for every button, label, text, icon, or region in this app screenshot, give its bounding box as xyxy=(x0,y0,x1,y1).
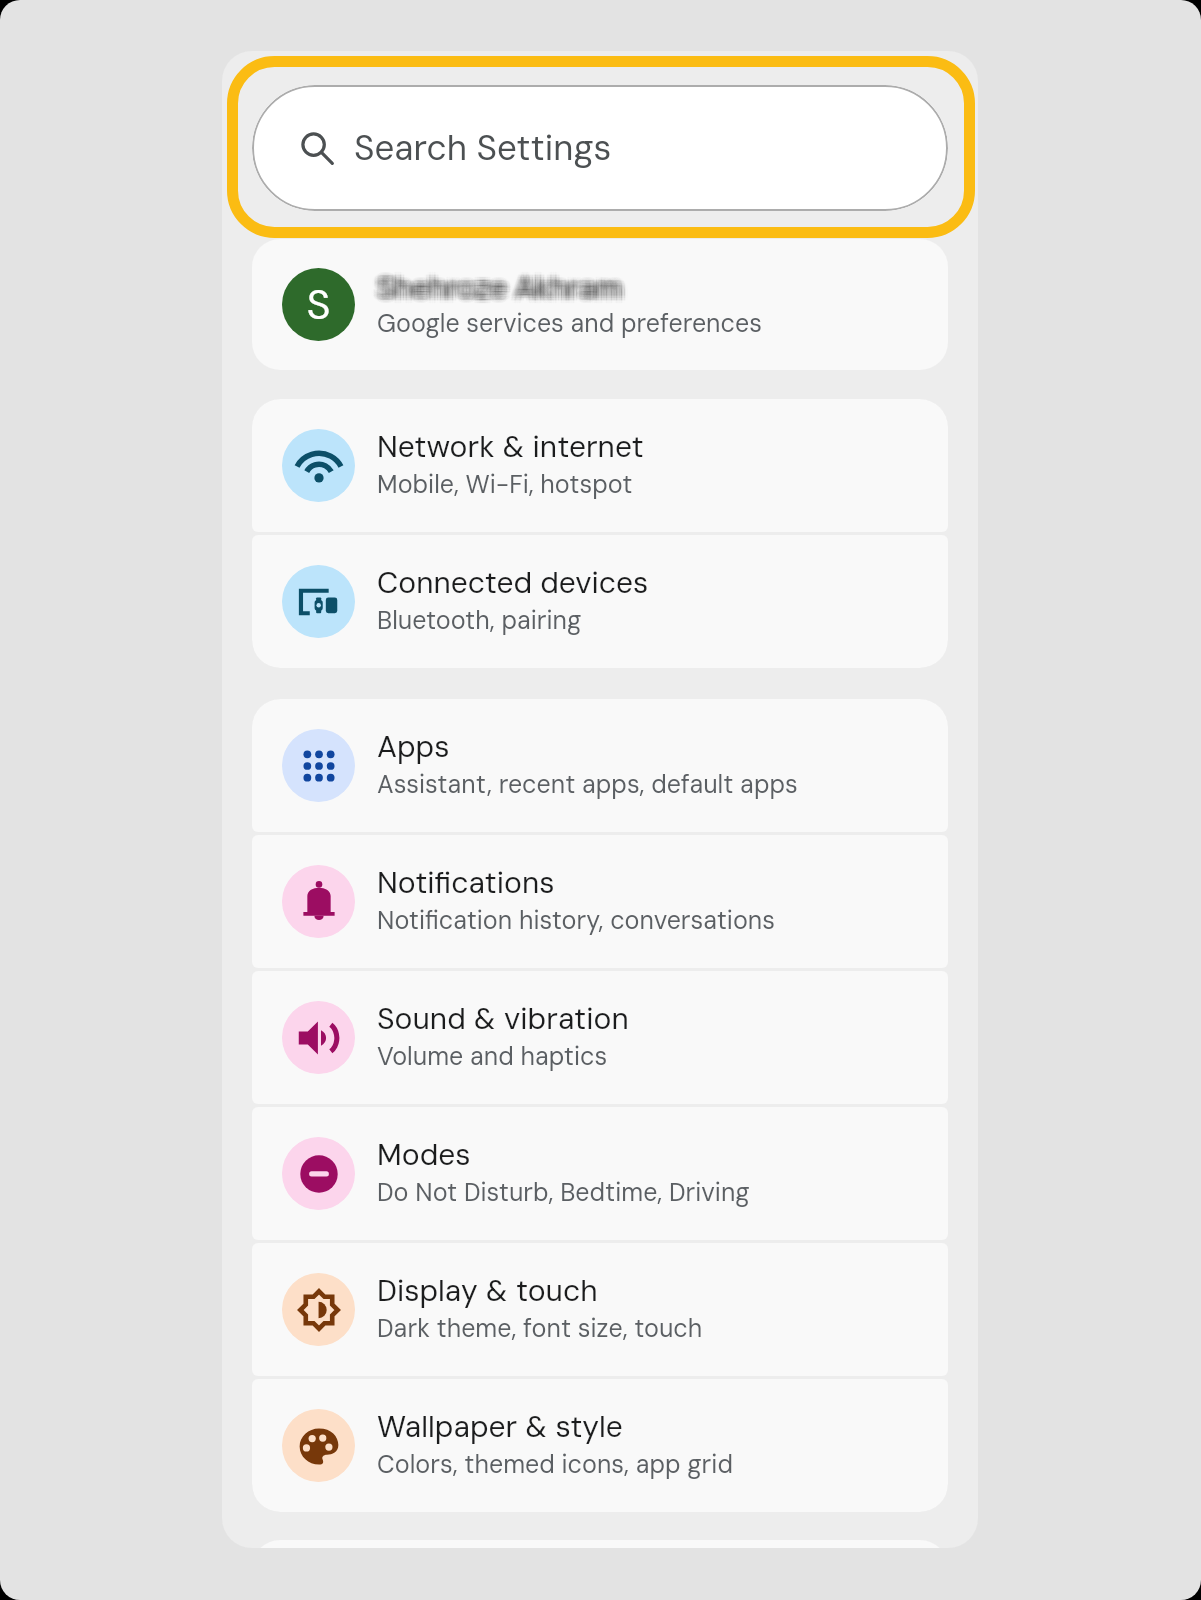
staticText: Shehroze Akhram xyxy=(369,266,615,302)
staticText: Shehroze Akhram xyxy=(374,270,620,306)
staticText: Shehroze Akhram xyxy=(374,263,620,299)
button[interactable]: Connected devices xyxy=(252,535,948,668)
staticText: Shehroze Akhram xyxy=(379,265,625,301)
staticText: Shehroze Akhram xyxy=(385,266,631,302)
staticText: Shehroze Akhram xyxy=(375,274,621,310)
staticText: Shehroze Akhram xyxy=(379,266,625,302)
staticText: Shehroze Akhram xyxy=(371,271,617,307)
staticText: Shehroze Akhram xyxy=(372,271,618,307)
staticText: Shehroze Akhram xyxy=(372,270,618,306)
staticText: Modes xyxy=(377,1135,471,1174)
staticText: Shehroze Akhram xyxy=(377,263,623,299)
staticText: Shehroze Akhram xyxy=(383,271,629,307)
staticText: Sound & vibration xyxy=(377,999,629,1038)
staticText: Shehroze Akhram xyxy=(382,263,628,299)
staticText: Colors, themed icons, app grid xyxy=(377,1448,733,1481)
staticText: Shehroze Akhram xyxy=(380,266,626,302)
staticText: Shehroze Akhram xyxy=(377,268,623,304)
staticText: Shehroze Akhram xyxy=(374,266,620,302)
staticText: Shehroze Akhram xyxy=(374,265,620,301)
staticText: Connected devices xyxy=(377,563,649,602)
staticText: Shehroze Akhram xyxy=(371,265,617,301)
staticText: Shehroze Akhram xyxy=(382,268,628,304)
staticText: Shehroze Akhram xyxy=(372,266,618,302)
staticText: Shehroze Akhram xyxy=(380,268,626,304)
staticText: Shehroze Akhram xyxy=(374,271,620,307)
staticText: Shehroze Akhram xyxy=(379,271,625,307)
button[interactable]: Search Settings xyxy=(252,85,948,211)
staticText: Shehroze Akhram xyxy=(382,271,628,307)
staticText: Shehroze Akhram xyxy=(375,273,621,309)
staticText: Shehroze Akhram xyxy=(375,263,621,299)
staticText: Network & internet xyxy=(377,427,644,466)
staticText: Shehroze Akhram xyxy=(377,270,623,306)
staticText: Shehroze Akhram xyxy=(380,265,626,301)
button[interactable]: Wallpaper & style xyxy=(252,1379,948,1512)
staticText: Shehroze Akhram xyxy=(377,262,623,298)
staticText: Shehroze Akhram xyxy=(375,262,621,298)
staticText: Shehroze Akhram xyxy=(380,263,626,299)
staticText: Shehroze Akhram xyxy=(380,270,626,306)
staticText: Shehroze Akhram xyxy=(377,274,623,310)
staticText: Shehroze Akhram xyxy=(379,273,625,309)
staticText: Bluetooth, pairing xyxy=(377,604,582,637)
staticText: Shehroze Akhram xyxy=(369,270,615,306)
staticText: Shehroze Akhram xyxy=(383,266,629,302)
staticText: Shehroze Akhram xyxy=(382,265,628,301)
staticText: Shehroze Akhram xyxy=(371,266,617,302)
staticText: Display & touch xyxy=(377,1271,598,1310)
staticText: Mobile, Wi-Fi, hotspot xyxy=(377,468,633,501)
staticText: Shehroze Akhram xyxy=(375,271,621,307)
staticText: Shehroze Akhram xyxy=(383,268,629,304)
button[interactable]: S xyxy=(252,239,948,370)
staticText: Shehroze Akhram xyxy=(383,265,629,301)
staticText: Shehroze Akhram xyxy=(377,271,623,307)
staticText: Shehroze Akhram xyxy=(385,270,631,306)
staticText: S xyxy=(306,278,331,331)
staticText: Google services and preferences xyxy=(377,307,762,340)
staticText: Shehroze Akhram xyxy=(369,268,615,304)
staticText: Shehroze Akhram xyxy=(371,268,617,304)
staticText: Shehroze Akhram xyxy=(379,274,625,310)
staticText: Shehroze Akhram xyxy=(372,268,618,304)
staticText: Do Not Disturb, Bedtime, Driving xyxy=(377,1176,750,1209)
staticText: Shehroze Akhram xyxy=(372,273,618,309)
staticText: Shehroze Akhram xyxy=(375,266,621,302)
staticText: Shehroze Akhram xyxy=(374,273,620,309)
staticText: Shehroze Akhram xyxy=(380,271,626,307)
staticText: Shehroze Akhram xyxy=(371,270,617,306)
staticText: Shehroze Akhram xyxy=(383,270,629,306)
staticText: Shehroze Akhram xyxy=(382,266,628,302)
staticText: Shehroze Akhram xyxy=(385,268,631,304)
button[interactable]: Modes xyxy=(252,1107,948,1240)
staticText: Notifications xyxy=(377,863,555,902)
staticText: Shehroze Akhram xyxy=(377,273,623,309)
staticText: Volume and haptics xyxy=(377,1040,608,1073)
button[interactable]: Sound & vibration xyxy=(252,971,948,1104)
staticText: Shehroze Akhram xyxy=(375,268,621,304)
staticText: Shehroze Akhram xyxy=(375,265,621,301)
staticText: Dark theme, font size, touch xyxy=(377,1312,703,1345)
staticText: Shehroze Akhram xyxy=(379,268,625,304)
staticText: Shehroze Akhram xyxy=(380,273,626,309)
staticText: Shehroze Akhram xyxy=(382,270,628,306)
staticText: Assistant, recent apps, default apps xyxy=(377,768,798,801)
staticText: Shehroze Akhram xyxy=(374,268,620,304)
staticText: Wallpaper & style xyxy=(377,1407,623,1446)
staticText: Shehroze Akhram xyxy=(379,263,625,299)
staticText: Shehroze Akhram xyxy=(379,270,625,306)
staticText: Shehroze Akhram xyxy=(375,270,621,306)
button[interactable]: Notifications xyxy=(252,835,948,968)
button[interactable]: Network & internet xyxy=(252,399,948,532)
staticText: Shehroze Akhram xyxy=(382,273,628,309)
staticText: Apps xyxy=(377,727,450,766)
staticText: Shehroze Akhram xyxy=(379,262,625,298)
button[interactable]: Display & touch xyxy=(252,1243,948,1376)
staticText: Notification history, conversations xyxy=(377,904,775,937)
staticText: Search Settings xyxy=(354,125,612,171)
staticText: Shehroze Akhram xyxy=(372,263,618,299)
staticText: Shehroze Akhram xyxy=(377,265,623,301)
button[interactable]: Apps xyxy=(252,699,948,832)
staticText: Shehroze Akhram xyxy=(372,265,618,301)
staticText: Shehroze Akhram xyxy=(377,266,623,302)
